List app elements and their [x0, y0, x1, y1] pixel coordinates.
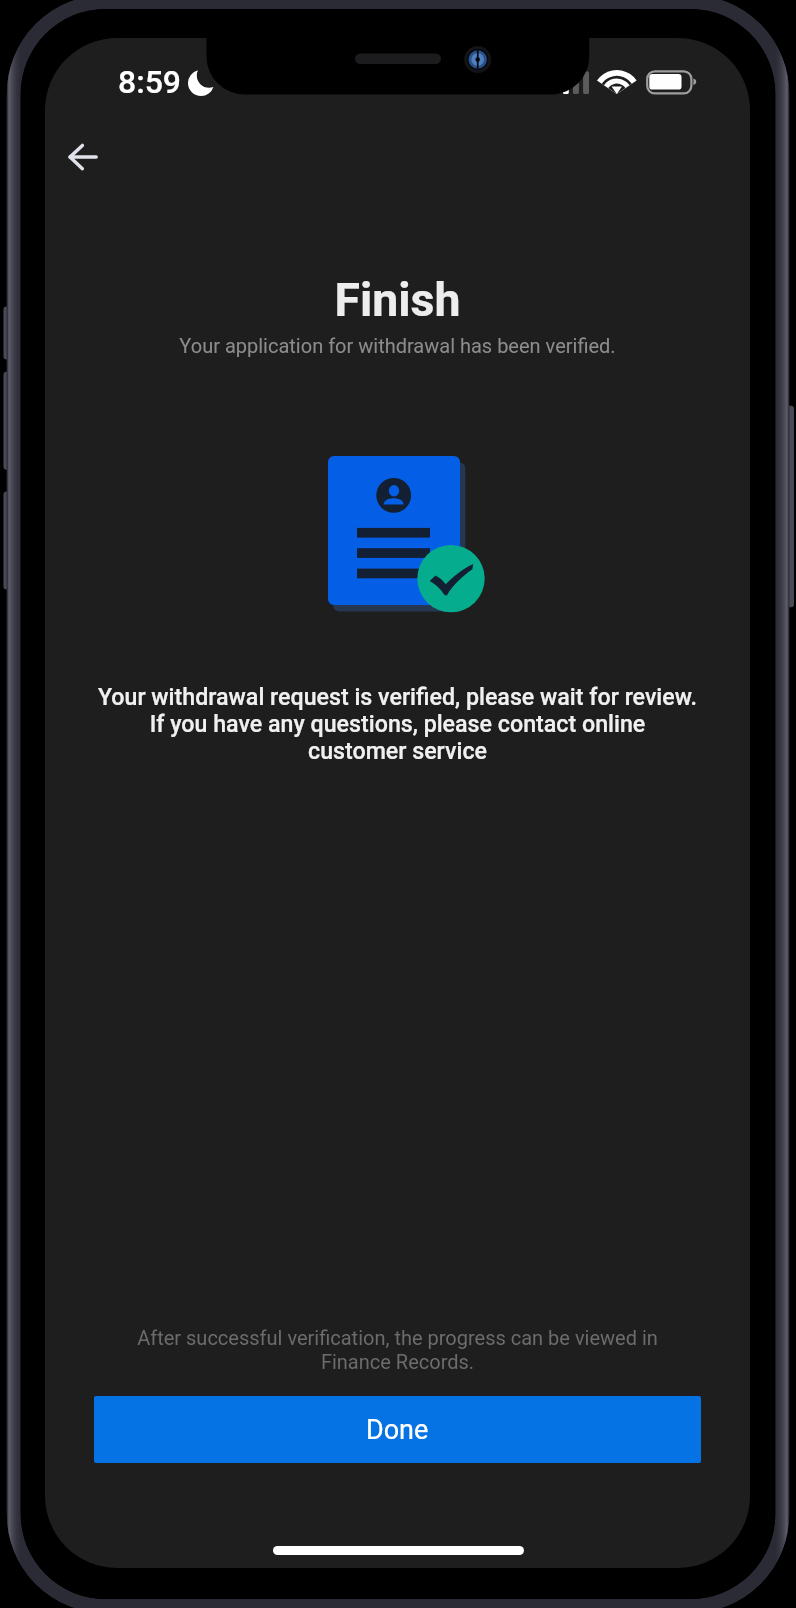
- button[interactable]: Done: [94, 1396, 701, 1463]
- staticText: Done: [366, 1414, 429, 1446]
- staticText: 8:59: [118, 63, 182, 101]
- staticText: After successful verification, the progr…: [90, 1326, 705, 1374]
- button[interactable]: Back: [52, 127, 112, 187]
- staticText: Your withdrawal request is verified, ple…: [87, 683, 708, 764]
- staticText: Your application for withdrawal has been…: [45, 334, 750, 357]
- staticText: Finish: [45, 273, 750, 327]
